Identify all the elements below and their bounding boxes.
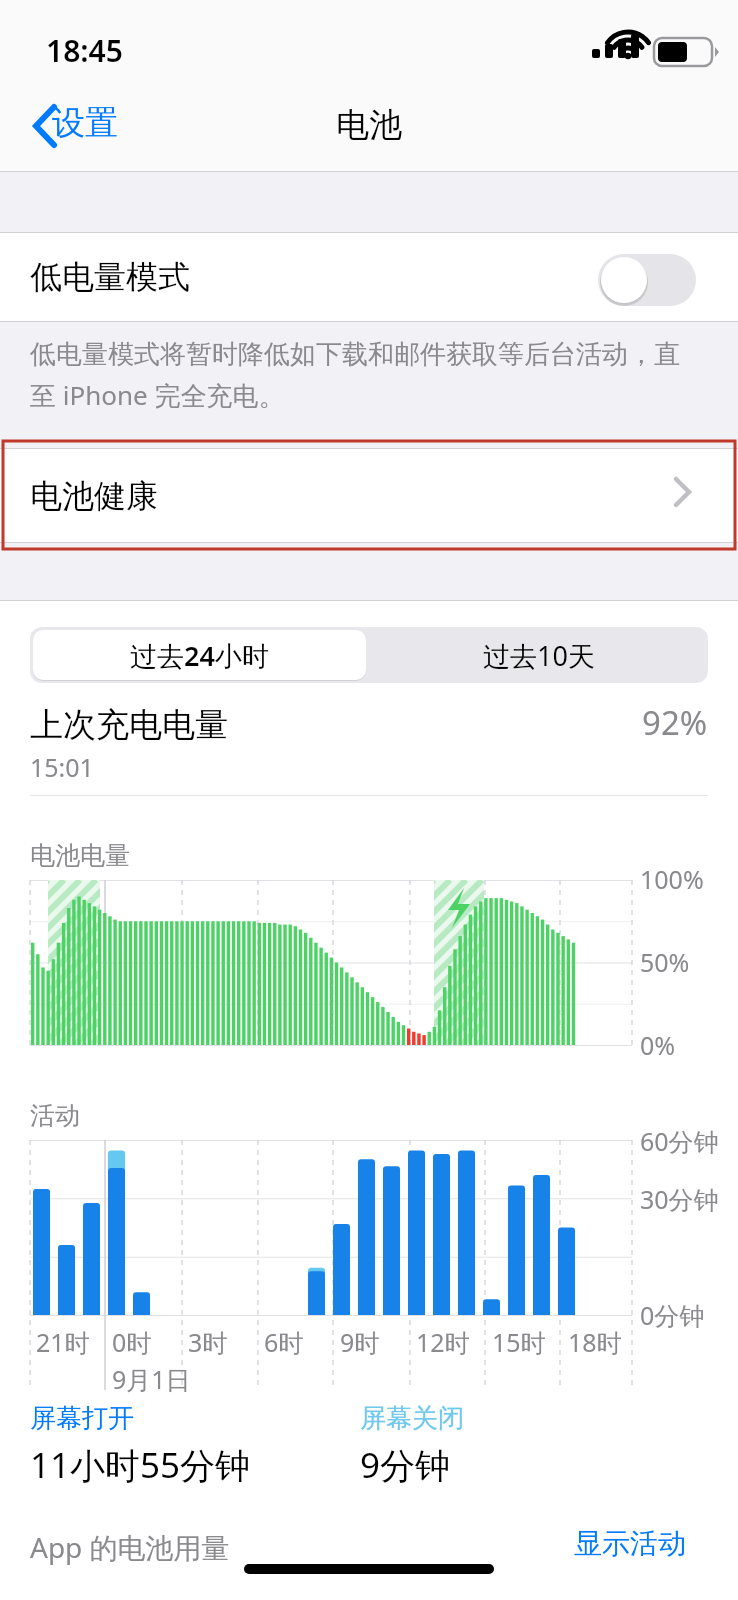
staticText: 6时 <box>264 1325 304 1359</box>
button[interactable]: 低电量模式开关 <box>610 251 708 303</box>
staticText: 活动 <box>30 1100 80 1131</box>
staticText: 100% <box>640 862 704 896</box>
staticText: 30分钟 <box>640 1182 719 1216</box>
staticText: 9分钟 <box>360 1441 451 1489</box>
staticText: 3时 <box>188 1325 228 1359</box>
staticText: 0分钟 <box>640 1298 705 1332</box>
staticText: 电池健康 <box>30 476 158 516</box>
button[interactable]: 电池健康 <box>0 449 738 542</box>
staticText: 9时 <box>340 1325 380 1359</box>
staticText: 上次充电电量 <box>30 704 228 746</box>
staticText: 15时 <box>492 1325 546 1359</box>
staticText: 92% <box>642 700 708 745</box>
staticText: 过去10天 <box>483 637 595 674</box>
button[interactable]: 显示活动 <box>568 1520 692 1567</box>
staticText: 12时 <box>416 1325 470 1359</box>
staticText: 设置 <box>52 102 118 144</box>
staticText: App 的电池用量 <box>30 1528 230 1566</box>
staticText: 15:01 <box>30 750 94 784</box>
button[interactable]: 低电量模式 <box>0 233 738 321</box>
button[interactable]: 设置 <box>18 98 128 148</box>
staticText: 屏幕关闭 <box>360 1402 464 1435</box>
staticText: 电池电量 <box>30 840 130 871</box>
staticText: 21时 <box>36 1325 90 1359</box>
staticText: 至 iPhone 完全充电。 <box>30 377 285 413</box>
staticText: 18:45 <box>46 30 123 71</box>
staticText: 过去24小时 <box>130 637 269 674</box>
staticText: 11小时55分钟 <box>30 1441 251 1489</box>
staticText: 50% <box>640 945 690 979</box>
staticText: 低电量模式将暂时降低如下载和邮件获取等后台活动，直 <box>30 338 680 371</box>
staticText: 电池 <box>336 104 402 146</box>
staticText: 0时 <box>112 1325 152 1359</box>
staticText: 低电量模式 <box>30 257 190 297</box>
staticText: 9月1日 <box>112 1362 191 1396</box>
staticText: 屏幕打开 <box>30 1402 134 1435</box>
staticText: 显示活动 <box>574 1526 686 1561</box>
staticText: 0% <box>640 1028 676 1062</box>
button[interactable]: 过去10天 <box>369 627 708 683</box>
staticText: 18时 <box>568 1325 622 1359</box>
staticText: 60分钟 <box>640 1124 719 1158</box>
button[interactable]: 过去24小时 <box>30 627 369 683</box>
